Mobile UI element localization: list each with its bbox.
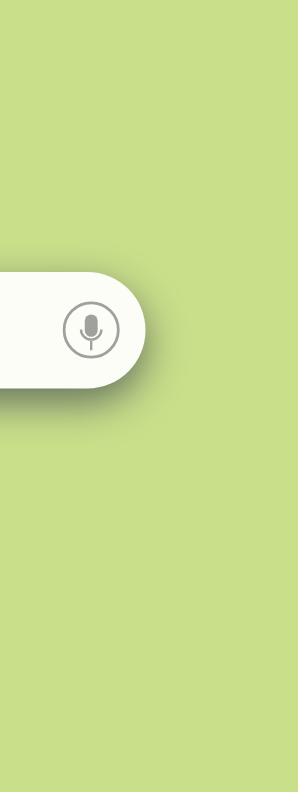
button[interactable]: Search by voice	[61, 300, 121, 360]
button[interactable]: Search	[0, 272, 146, 389]
